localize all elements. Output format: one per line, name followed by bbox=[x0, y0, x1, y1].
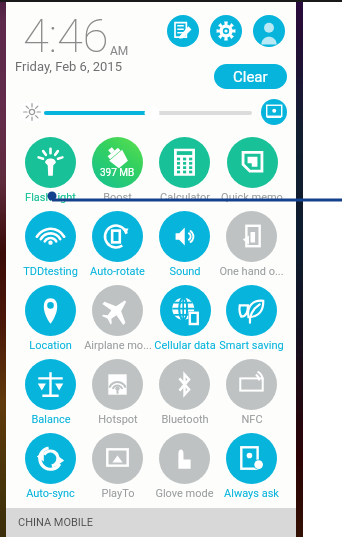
staticText: Cellular data bbox=[154, 339, 216, 352]
staticText: TDDtesting bbox=[23, 265, 78, 278]
button[interactable]: 397 MB bbox=[84, 131, 151, 205]
staticText: Always ask bbox=[224, 487, 279, 500]
staticText: Glove mode bbox=[155, 487, 214, 500]
button[interactable]: Always ask bbox=[218, 427, 285, 501]
staticText: AM bbox=[110, 44, 129, 58]
button[interactable]: Location bbox=[17, 279, 84, 353]
staticText: FlashLight bbox=[25, 191, 76, 204]
button[interactable]: Brightness bbox=[21, 101, 43, 123]
button[interactable]: NFC bbox=[218, 353, 285, 427]
button[interactable]: One hand o... bbox=[218, 205, 285, 279]
button[interactable]: Profile bbox=[253, 15, 285, 47]
staticText: Hotspot bbox=[98, 413, 138, 426]
button[interactable]: Sound bbox=[151, 205, 218, 279]
staticText: Boost bbox=[103, 191, 132, 204]
button[interactable]: Hotspot bbox=[84, 353, 151, 427]
staticText: Auto-rotate bbox=[90, 265, 145, 278]
button[interactable]: Cellular data bbox=[151, 279, 218, 353]
button[interactable]: Notes bbox=[167, 15, 199, 47]
button[interactable]: Clear bbox=[214, 64, 287, 89]
staticText: One hand o... bbox=[219, 265, 284, 278]
button[interactable]: Airplane mo... bbox=[84, 279, 151, 353]
staticText: Smart saving bbox=[219, 339, 284, 352]
staticText: Quick memo bbox=[221, 191, 283, 204]
button[interactable]: Calculator bbox=[151, 131, 218, 205]
button[interactable]: Quick memo bbox=[218, 131, 285, 205]
button[interactable]: PlayTo bbox=[84, 427, 151, 501]
staticText: 397 MB bbox=[100, 167, 135, 179]
button[interactable]: TDDtesting bbox=[17, 205, 84, 279]
staticText: Balance bbox=[31, 413, 71, 426]
staticText: Auto-sync bbox=[26, 487, 75, 500]
button[interactable]: Auto-sync bbox=[17, 427, 84, 501]
button[interactable]: Auto-rotate bbox=[84, 205, 151, 279]
button[interactable]: Auto brightness bbox=[261, 99, 287, 125]
staticText: Airplane mo... bbox=[84, 339, 151, 352]
button[interactable]: Balance bbox=[17, 353, 84, 427]
staticText: CHINA MOBILE bbox=[18, 516, 94, 529]
staticText: NFC bbox=[241, 413, 263, 426]
staticText: 4:46 bbox=[23, 8, 109, 63]
staticText: Calculator bbox=[160, 191, 210, 204]
staticText: Location bbox=[29, 339, 72, 352]
button[interactable]: FlashLight bbox=[17, 131, 84, 205]
button[interactable]: Smart saving bbox=[218, 279, 285, 353]
staticText: Bluetooth bbox=[161, 413, 209, 426]
staticText: PlayTo bbox=[101, 487, 135, 500]
staticText: Sound bbox=[169, 265, 201, 278]
button[interactable]: Bluetooth bbox=[151, 353, 218, 427]
button[interactable]: Settings bbox=[210, 15, 242, 47]
button[interactable]: Glove mode bbox=[151, 427, 218, 501]
staticText: Friday, Feb 6, 2015 bbox=[15, 59, 122, 74]
staticText: Clear bbox=[233, 68, 268, 86]
